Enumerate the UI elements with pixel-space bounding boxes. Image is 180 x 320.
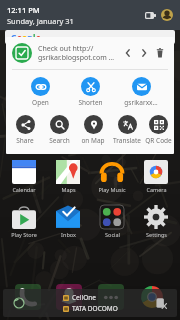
staticText: Share [16, 136, 34, 145]
button[interactable]: Clear clipboard [153, 295, 169, 311]
button[interactable]: Messages [98, 284, 124, 310]
staticText: CellOne [72, 293, 96, 302]
button[interactable]: Next [136, 45, 152, 61]
button[interactable]: on Map [76, 114, 110, 146]
button[interactable]: Calendar [4, 160, 44, 193]
staticText: Play Store [11, 231, 37, 238]
staticText: o [17, 32, 22, 43]
staticText: on Map [81, 136, 105, 145]
button[interactable]: Phone [15, 284, 41, 310]
button[interactable]: Translate [110, 114, 144, 146]
button[interactable]: Inbox [48, 205, 88, 238]
button[interactable]: QR Code [144, 114, 172, 146]
staticText: Check out http://gsrikar.blogspot.com an… [38, 44, 117, 62]
staticText: Camera [146, 186, 167, 193]
button[interactable]: Open [23, 76, 57, 108]
staticText: g [27, 32, 33, 43]
staticText: Calendar [12, 186, 36, 193]
button[interactable]: Camera [136, 160, 176, 193]
staticText: Sunday, January 31 [7, 16, 74, 26]
button[interactable]: Search [42, 114, 76, 146]
staticText: QR Code [145, 136, 172, 145]
button[interactable]: G [5, 30, 175, 44]
staticText: l [33, 32, 36, 43]
button[interactable]: Profile [161, 9, 173, 21]
staticText: Social [105, 231, 120, 238]
staticText: Inbox [61, 231, 76, 238]
staticText: e [36, 32, 41, 43]
staticText: Translate [113, 136, 141, 145]
button[interactable]: Play Store [4, 205, 44, 238]
staticText: o [22, 32, 27, 43]
button[interactable]: Chrome [139, 284, 165, 310]
button[interactable]: Social [92, 205, 132, 238]
button[interactable]: Undo [11, 295, 27, 311]
staticText: Open [32, 98, 49, 107]
staticText: 12:11 PM [7, 5, 40, 15]
button[interactable]: Settings [136, 205, 176, 238]
button[interactable]: Previous [120, 45, 136, 61]
button[interactable]: gsrikarxxxx@g… [124, 76, 158, 108]
staticText: Settings [146, 231, 167, 238]
button[interactable]: Play Music [92, 160, 132, 193]
button[interactable]: Share [8, 114, 42, 146]
button[interactable]: Shorten [73, 76, 107, 108]
staticText: Search [49, 136, 70, 145]
staticText: TATA DOCOMO [72, 304, 118, 313]
staticText: gsrikarxxxx@g… [124, 98, 158, 107]
staticText: Play Music [98, 186, 126, 193]
staticText: Maps [61, 186, 76, 193]
button[interactable]: Contacts [56, 284, 82, 310]
staticText: G [11, 32, 17, 43]
button[interactable]: Delete [152, 45, 168, 61]
staticText: Shorten [78, 98, 103, 107]
button[interactable]: Maps [48, 160, 88, 193]
